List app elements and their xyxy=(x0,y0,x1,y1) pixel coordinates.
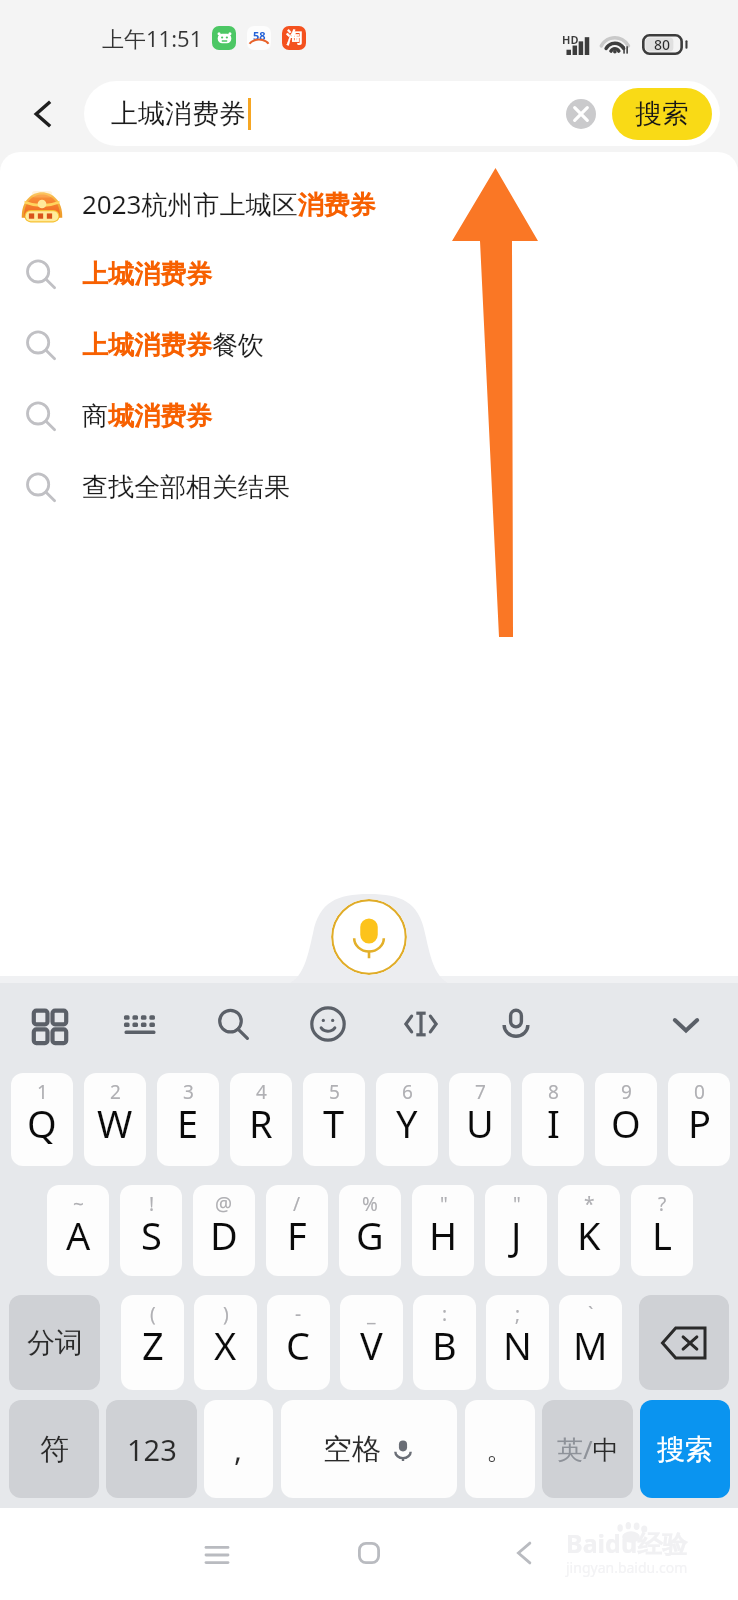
button[interactable]: 。 xyxy=(465,1400,535,1498)
staticText: 9 xyxy=(621,1079,632,1105)
staticText: 查找全部相关结果 xyxy=(82,471,290,504)
staticText: O xyxy=(611,1097,641,1149)
staticText: I xyxy=(547,1097,560,1149)
staticText: , xyxy=(234,1429,243,1470)
button[interactable]: kbd xyxy=(114,998,166,1050)
staticText: Z xyxy=(142,1319,164,1371)
button[interactable]: , xyxy=(204,1400,273,1498)
button[interactable]: 8 xyxy=(522,1073,584,1166)
button[interactable]: 9 xyxy=(595,1073,657,1166)
staticText: 搜索 xyxy=(657,1432,713,1467)
button[interactable]: Recent apps xyxy=(187,1525,247,1585)
staticText: ( xyxy=(150,1301,156,1327)
staticText: 123 xyxy=(127,1430,177,1469)
button[interactable]: 英/中 xyxy=(542,1400,633,1498)
button[interactable]: * xyxy=(558,1185,620,1276)
button[interactable]: " xyxy=(412,1185,474,1276)
button[interactable]: Voice input xyxy=(331,899,407,975)
button[interactable]: Clear text xyxy=(558,91,604,137)
staticText: 5 xyxy=(329,1079,340,1105)
staticText: 7 xyxy=(475,1079,486,1105)
staticText: B xyxy=(432,1319,457,1371)
button[interactable]: ~ xyxy=(47,1185,109,1276)
button[interactable]: 1 xyxy=(11,1073,73,1166)
staticText: 分词 xyxy=(27,1325,83,1360)
staticText: 搜索 xyxy=(635,97,689,131)
button[interactable]: ; xyxy=(486,1295,549,1390)
button[interactable]: 4 xyxy=(230,1073,292,1166)
button[interactable]: 2 xyxy=(84,1073,146,1166)
button[interactable]: " xyxy=(485,1185,547,1276)
button[interactable]: Home xyxy=(339,1523,399,1583)
button[interactable]: Hide keyboard xyxy=(660,998,712,1050)
staticText: ; xyxy=(515,1301,521,1327)
button[interactable]: search xyxy=(207,998,259,1050)
staticText: W xyxy=(97,1097,133,1149)
staticText: E xyxy=(177,1097,199,1149)
button[interactable]: mic xyxy=(490,998,542,1050)
button[interactable]: 2023杭州市上城区消费券 xyxy=(0,168,738,239)
button[interactable]: Back xyxy=(14,85,72,143)
staticText: 80 xyxy=(654,35,671,54)
staticText: 上城消费券 xyxy=(82,258,212,291)
staticText: ? xyxy=(658,1191,667,1217)
staticText: " xyxy=(440,1191,448,1217)
staticText: - xyxy=(295,1301,302,1327)
button[interactable]: _ xyxy=(340,1295,403,1390)
staticText: F xyxy=(287,1209,307,1261)
button[interactable]: 123 xyxy=(106,1400,197,1498)
staticText: 商城消费券 xyxy=(82,400,212,433)
button[interactable]: 查找全部相关结果 xyxy=(0,452,738,523)
staticText: 2 xyxy=(110,1079,121,1105)
button[interactable]: grid xyxy=(24,998,76,1050)
button[interactable]: 搜索 xyxy=(612,88,712,140)
button[interactable]: 符 xyxy=(9,1400,99,1498)
button[interactable]: 3 xyxy=(157,1073,219,1166)
button[interactable]: 搜索 xyxy=(640,1400,730,1498)
staticText: C xyxy=(286,1319,311,1371)
button[interactable]: 7 xyxy=(449,1073,511,1166)
staticText: 淘 xyxy=(286,28,302,48)
staticText: 。 xyxy=(486,1432,514,1467)
staticText: ` xyxy=(588,1301,594,1327)
staticText: 1 xyxy=(37,1079,48,1105)
button[interactable]: 6 xyxy=(376,1073,438,1166)
button[interactable]: : xyxy=(413,1295,476,1390)
staticText: : xyxy=(442,1301,448,1327)
staticText: M xyxy=(573,1319,608,1371)
button[interactable]: ! xyxy=(120,1185,182,1276)
button[interactable]: ` xyxy=(559,1295,622,1390)
staticText: Baidu经验 xyxy=(566,1526,688,1560)
button[interactable]: 上城消费券餐饮 xyxy=(0,310,738,381)
button[interactable]: / xyxy=(266,1185,328,1276)
button[interactable]: 0 xyxy=(668,1073,730,1166)
button[interactable]: 商城消费券 xyxy=(0,381,738,452)
staticText: 2023杭州市上城区消费券 xyxy=(82,186,376,222)
staticText: jingyan.baidu.com xyxy=(566,1558,688,1577)
button[interactable]: Back xyxy=(494,1523,554,1583)
staticText: J xyxy=(511,1209,522,1261)
button[interactable]: smile xyxy=(302,998,354,1050)
staticText: 4 xyxy=(256,1079,267,1105)
button[interactable]: 5 xyxy=(303,1073,365,1166)
button[interactable]: ( xyxy=(121,1295,184,1390)
staticText: 空格 xyxy=(323,1431,381,1468)
staticText: K xyxy=(577,1209,601,1261)
button[interactable]: 上城消费券 xyxy=(0,239,738,310)
button[interactable]: 分词 xyxy=(9,1295,100,1390)
staticText: 上城消费券餐饮 xyxy=(82,329,264,362)
staticText: 58 xyxy=(253,28,266,43)
staticText: H xyxy=(429,1209,458,1261)
button[interactable]: 空格 xyxy=(281,1400,457,1498)
button[interactable]: ) xyxy=(194,1295,257,1390)
button[interactable]: cursor xyxy=(395,998,447,1050)
button[interactable]: ? xyxy=(631,1185,693,1276)
staticText: ~ xyxy=(73,1191,84,1217)
button[interactable]: Delete xyxy=(639,1295,729,1390)
staticText: S xyxy=(141,1209,162,1261)
button[interactable]: % xyxy=(339,1185,401,1276)
button[interactable]: @ xyxy=(193,1185,255,1276)
staticText: X xyxy=(214,1319,237,1371)
button[interactable]: - xyxy=(267,1295,330,1390)
staticText: P xyxy=(688,1097,711,1149)
